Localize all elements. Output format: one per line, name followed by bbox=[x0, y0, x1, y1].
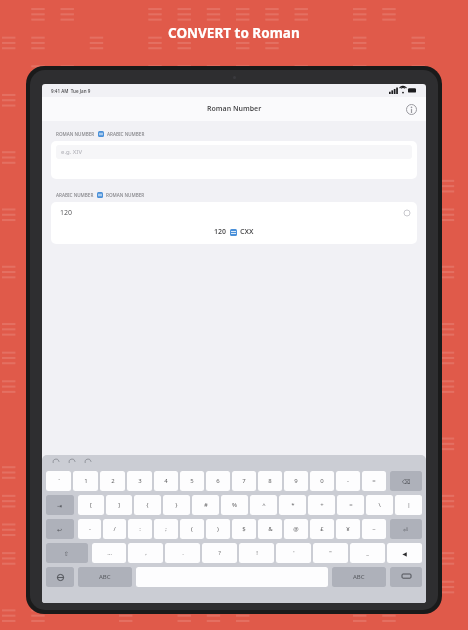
button[interactable]: @ bbox=[284, 519, 308, 539]
staticText: 5 bbox=[190, 477, 194, 485]
button[interactable]: \ bbox=[366, 495, 393, 515]
button[interactable]: = bbox=[362, 471, 386, 491]
button[interactable]: 2 bbox=[100, 471, 125, 491]
button[interactable]: ? bbox=[202, 543, 237, 563]
button[interactable]: + bbox=[308, 495, 335, 515]
button[interactable]: Caps lock bbox=[46, 519, 74, 539]
staticText: } bbox=[175, 501, 178, 509]
button[interactable]: ABC bbox=[78, 567, 132, 587]
button[interactable]: * bbox=[279, 495, 306, 515]
staticText: 0 bbox=[320, 477, 324, 485]
staticText: - bbox=[347, 477, 349, 485]
button[interactable]: ◀ bbox=[387, 543, 422, 563]
button[interactable]: 8 bbox=[258, 471, 282, 491]
button[interactable]: : bbox=[128, 519, 152, 539]
staticText: # bbox=[204, 501, 208, 509]
button[interactable]: Change keyboard language bbox=[46, 567, 74, 587]
staticText: * bbox=[291, 501, 295, 509]
button[interactable]: - bbox=[336, 471, 360, 491]
button[interactable]: ABC bbox=[332, 567, 386, 587]
staticText: % bbox=[232, 501, 237, 509]
staticText: ROMAN NUMBER bbox=[56, 131, 95, 137]
button[interactable]: e.g. XIV bbox=[51, 141, 417, 179]
button[interactable]: } bbox=[163, 495, 190, 515]
button[interactable]: ] bbox=[106, 495, 132, 515]
staticText: / bbox=[113, 525, 116, 533]
button[interactable]: Paste bbox=[83, 457, 93, 467]
button[interactable]: % bbox=[221, 495, 248, 515]
button[interactable]: - bbox=[78, 519, 101, 539]
staticText: ABC bbox=[353, 573, 365, 581]
button[interactable]: , bbox=[128, 543, 163, 563]
button[interactable]: & bbox=[258, 519, 282, 539]
button[interactable]: Undo bbox=[51, 457, 61, 467]
button[interactable]: 3 bbox=[127, 471, 152, 491]
button[interactable]: _ bbox=[350, 543, 385, 563]
button[interactable]: 6 bbox=[206, 471, 230, 491]
button[interactable]: | bbox=[395, 495, 422, 515]
button[interactable]: ) bbox=[206, 519, 230, 539]
staticText: $ bbox=[242, 525, 246, 533]
button[interactable]: = bbox=[337, 495, 364, 515]
staticText: { bbox=[146, 501, 149, 509]
staticText: ⇧ bbox=[64, 550, 70, 557]
button[interactable]: Tab bbox=[46, 495, 74, 515]
button[interactable]: Hide keyboard bbox=[390, 567, 422, 587]
staticText: ROMAN NUMBER bbox=[106, 192, 145, 198]
staticText: e.g. XIV bbox=[61, 148, 83, 156]
button[interactable]: ' bbox=[276, 543, 311, 563]
button[interactable]: Backspace bbox=[390, 471, 422, 491]
button[interactable]: / bbox=[103, 519, 126, 539]
staticText: " bbox=[329, 549, 332, 557]
staticText: 9:41 AM Tue Jan 9 bbox=[51, 88, 91, 94]
button[interactable]: … bbox=[92, 543, 126, 563]
staticText: ^ bbox=[262, 501, 266, 509]
button[interactable]: " bbox=[313, 543, 348, 563]
staticText: 120 bbox=[60, 208, 73, 218]
staticText: [ bbox=[90, 501, 92, 509]
staticText: ] bbox=[118, 501, 120, 509]
button[interactable]: ` bbox=[46, 471, 71, 491]
button[interactable]: Info bbox=[404, 102, 418, 116]
staticText: 8 bbox=[268, 477, 272, 485]
button[interactable]: ! bbox=[239, 543, 274, 563]
button[interactable]: $ bbox=[232, 519, 256, 539]
staticText: _ bbox=[366, 549, 369, 557]
button[interactable]: Clear text bbox=[402, 208, 412, 218]
staticText: 4 bbox=[164, 477, 168, 485]
button[interactable]: Redo bbox=[67, 457, 77, 467]
button[interactable]: 9 bbox=[284, 471, 308, 491]
button[interactable]: ^ bbox=[250, 495, 277, 515]
staticText: ⏎ bbox=[403, 526, 409, 533]
staticText: ⇥ bbox=[57, 502, 63, 509]
button[interactable]: ¥ bbox=[336, 519, 360, 539]
staticText: ` bbox=[58, 477, 60, 485]
staticText: 9 bbox=[294, 477, 298, 485]
button[interactable]: { bbox=[134, 495, 161, 515]
button[interactable]: [ bbox=[78, 495, 104, 515]
staticText: . bbox=[182, 549, 184, 557]
button[interactable]: £ bbox=[310, 519, 334, 539]
button[interactable]: Shift bbox=[46, 543, 88, 563]
staticText: 6 bbox=[216, 477, 220, 485]
staticText: @ bbox=[293, 525, 299, 533]
staticText: - bbox=[89, 525, 91, 533]
button[interactable]: . bbox=[165, 543, 200, 563]
button[interactable]: 5 bbox=[180, 471, 204, 491]
staticText: ( bbox=[191, 525, 193, 533]
button[interactable]: 1 bbox=[73, 471, 98, 491]
staticText: ABC bbox=[99, 573, 111, 581]
button[interactable]: ( bbox=[180, 519, 204, 539]
button[interactable]: Return bbox=[390, 519, 422, 539]
button[interactable]: # bbox=[192, 495, 219, 515]
staticText: ⌫ bbox=[402, 478, 411, 485]
button[interactable]: ~ bbox=[362, 519, 386, 539]
button[interactable]: 4 bbox=[154, 471, 178, 491]
button[interactable]: 7 bbox=[232, 471, 256, 491]
button[interactable]: ; bbox=[154, 519, 178, 539]
staticText: 7 bbox=[242, 477, 246, 485]
button[interactable]: 120 bbox=[51, 202, 417, 244]
staticText: 3 bbox=[138, 477, 142, 485]
button[interactable]: 0 bbox=[310, 471, 334, 491]
